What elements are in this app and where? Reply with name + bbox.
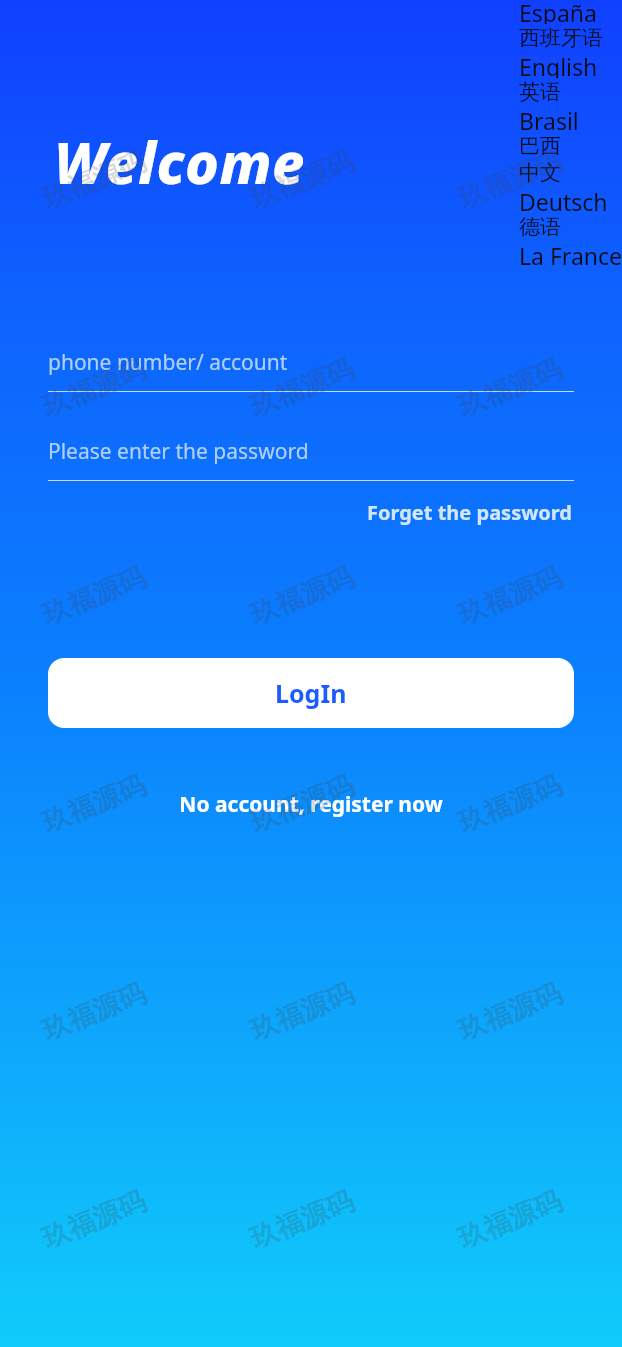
button[interactable]: 德语 (519, 213, 561, 240)
staticText: 英语 (519, 79, 561, 105)
staticText: 巴西 (519, 133, 561, 159)
staticText: phone number/ account (48, 348, 288, 377)
button[interactable]: Forget the password (365, 495, 574, 530)
button[interactable]: Deutsch (519, 186, 608, 213)
staticText: Welcome (54, 123, 305, 201)
button[interactable]: No account, register now (175, 786, 447, 823)
staticText: España (519, 0, 597, 24)
staticText: English (519, 51, 598, 78)
button[interactable]: España (519, 0, 597, 24)
button[interactable]: Please enter the password (48, 422, 574, 480)
button[interactable]: phone number/ account (48, 333, 574, 391)
button[interactable]: La France (519, 240, 622, 267)
button[interactable]: 英语 (519, 78, 561, 105)
staticText: 德语 (519, 214, 561, 240)
staticText: Brasil (519, 105, 579, 132)
button[interactable]: 中文 (519, 159, 561, 186)
staticText: Deutsch (519, 186, 608, 213)
button[interactable]: Brasil (519, 105, 579, 132)
staticText: Forget the password (367, 499, 572, 526)
button[interactable]: English (519, 51, 598, 78)
staticText: La France (519, 240, 622, 267)
staticText: 中文 (519, 160, 561, 186)
button[interactable]: 巴西 (519, 132, 561, 159)
staticText: 西班牙语 (519, 25, 603, 51)
button[interactable]: LogIn (48, 658, 574, 728)
staticText: LogIn (275, 676, 347, 710)
staticText: Please enter the password (48, 437, 309, 466)
staticText: No account, register now (179, 790, 443, 819)
button[interactable]: 西班牙语 (519, 24, 603, 51)
